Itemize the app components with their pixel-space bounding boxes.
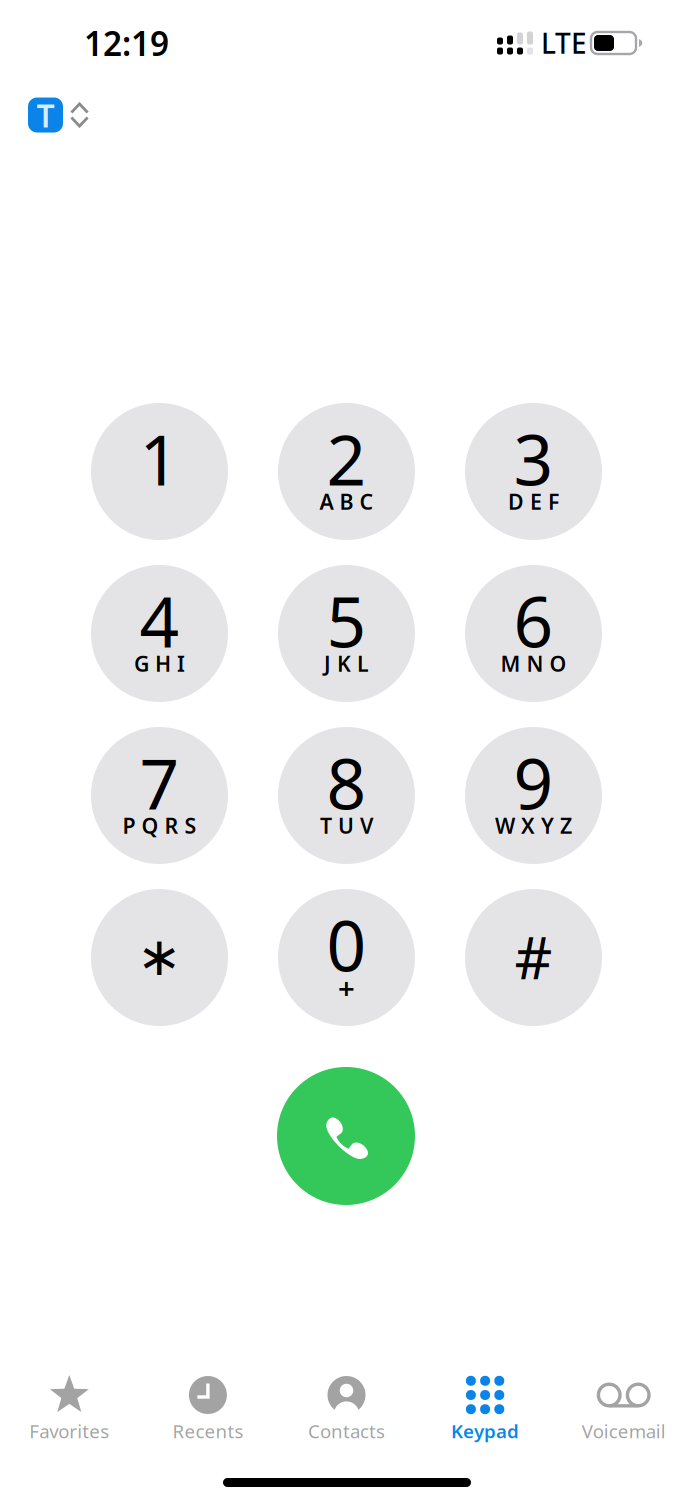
staticText: A B C [319,487,373,516]
staticText: 9 [513,736,553,829]
button[interactable]: Favorites [0,1369,139,1455]
staticText: 6 [513,574,553,667]
staticText: Favorites [29,1419,109,1443]
button[interactable]: Select phone line [28,95,112,135]
button[interactable]: Contacts [277,1369,416,1455]
staticText: # [514,917,552,995]
staticText: 4 [139,574,179,667]
button[interactable]: 7 [91,727,228,864]
button[interactable]: 9 [465,727,602,864]
button[interactable]: Keypad [416,1369,554,1455]
staticText: Contacts [308,1419,385,1443]
button[interactable]: 3 [465,403,602,540]
staticText: J K L [324,649,369,678]
staticText: Recents [172,1419,243,1443]
button[interactable]: Voicemail [554,1369,693,1455]
staticText: T U V [320,811,373,840]
button[interactable]: 4 [91,565,228,702]
button[interactable]: 1 [91,403,228,540]
staticText: 0 [326,898,366,991]
staticText: D E F [508,487,559,516]
button[interactable]: Call [277,1067,415,1205]
button[interactable]: 8 [278,727,415,864]
staticText: Keypad [451,1419,519,1443]
staticText: Voicemail [582,1419,666,1443]
staticText: 12:19 [84,21,169,65]
staticText: T [36,94,54,136]
staticText: 1 [139,412,179,505]
button[interactable]: Recents [139,1369,277,1455]
staticText: 8 [326,736,366,829]
button[interactable]: 0 [278,889,415,1026]
button[interactable]: 5 [278,565,415,702]
button[interactable]: # [465,889,602,1026]
button[interactable]: 6 [465,565,602,702]
staticText: 3 [513,412,553,505]
staticText: ∗ [137,926,182,987]
button[interactable]: ∗ [91,889,228,1026]
staticText: G H I [134,649,185,678]
staticText: 7 [139,736,179,829]
staticText: M N O [500,649,566,678]
staticText: 2 [326,412,366,505]
staticText: + [338,968,355,1007]
button[interactable]: 2 [278,403,415,540]
staticText: 5 [326,574,366,667]
staticText: P Q R S [122,811,196,840]
staticText: W X Y Z [495,811,572,840]
staticText: LTE [541,24,587,62]
